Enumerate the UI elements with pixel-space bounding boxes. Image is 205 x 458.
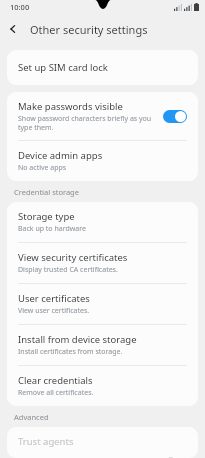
button[interactable]: Install from device storage bbox=[7, 325, 198, 365]
button[interactable]: Storage type bbox=[7, 202, 198, 242]
staticText: Display trusted CA certificates. bbox=[18, 265, 118, 275]
staticText: Make passwords visible bbox=[18, 100, 123, 113]
staticText: Device admin apps bbox=[18, 149, 103, 162]
staticText: Set up SIM card lock bbox=[18, 61, 108, 74]
staticText: Storage type bbox=[18, 210, 75, 223]
staticText: View user certificates. bbox=[18, 306, 90, 316]
button[interactable]: Clear credentials bbox=[7, 366, 198, 406]
button[interactable]: Device admin apps bbox=[7, 141, 198, 181]
staticText: Advanced bbox=[14, 412, 49, 422]
staticText: Install from device storage bbox=[18, 333, 137, 346]
button[interactable]: Back bbox=[0, 16, 26, 42]
staticText: View security certificates bbox=[18, 251, 128, 264]
button[interactable]: User certificates bbox=[7, 284, 198, 324]
staticText: No active apps bbox=[18, 163, 67, 173]
staticText: Trust agents bbox=[18, 435, 74, 448]
button[interactable]: Make passwords visible bbox=[7, 92, 198, 140]
button[interactable]: Set up SIM card lock bbox=[7, 50, 198, 85]
staticText: Clear credentials bbox=[18, 374, 93, 387]
staticText: Credential storage bbox=[14, 187, 79, 197]
staticText: Install certificates from storage. bbox=[18, 347, 123, 357]
staticText: User certificates bbox=[18, 292, 90, 305]
staticText: Back up to hardware bbox=[18, 224, 86, 234]
button[interactable]: Trust agents bbox=[7, 427, 198, 458]
button[interactable]: View security certificates bbox=[7, 243, 198, 283]
button[interactable]: Make passwords visible toggle bbox=[163, 110, 187, 123]
staticText: Remove all certificates. bbox=[18, 388, 94, 398]
staticText: Other security settings bbox=[30, 22, 148, 37]
staticText: Show password characters briefly as you … bbox=[18, 114, 157, 132]
staticText: 10:00 bbox=[10, 2, 30, 12]
